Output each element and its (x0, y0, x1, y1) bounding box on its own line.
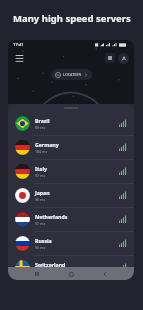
button[interactable]: LOCATION (51, 69, 92, 80)
staticText: Switzerland (35, 261, 66, 268)
button[interactable]: Italy (8, 159, 134, 183)
staticText: 90 ms (35, 197, 46, 202)
staticText: 89 ms (35, 125, 46, 130)
button[interactable]: Brazil (8, 111, 134, 135)
staticText: Italy (35, 165, 47, 172)
staticText: 95 ms (35, 269, 46, 274)
button[interactable]: Home (66, 269, 76, 279)
button[interactable]: Switzerland (8, 255, 134, 279)
button[interactable]: Recents (32, 269, 42, 279)
staticText: Germany (35, 141, 59, 148)
staticText: 17:41 (13, 42, 24, 48)
button[interactable]: Back (100, 269, 110, 279)
staticText: 97 ms (35, 221, 46, 226)
button[interactable]: Japan (8, 183, 134, 207)
button[interactable]: Russia (8, 231, 134, 255)
staticText: Japan (35, 189, 50, 196)
button[interactable]: Account (118, 53, 129, 64)
staticText: Russia (35, 237, 52, 244)
staticText: Brazil (35, 117, 50, 124)
staticText: 184 ms (35, 149, 48, 154)
staticText: LOCATION (63, 72, 82, 77)
button[interactable]: USA (8, 279, 134, 280)
staticText: 95 ms (35, 245, 46, 250)
staticText: Netherlands (35, 213, 68, 220)
button[interactable]: Menu (13, 52, 25, 64)
staticText: 97 ms (35, 173, 46, 178)
button[interactable]: Netherlands (8, 207, 134, 231)
staticText: Many high speed servers (13, 12, 131, 25)
button[interactable]: Germany (8, 135, 134, 159)
button[interactable]: Premium (105, 53, 115, 63)
